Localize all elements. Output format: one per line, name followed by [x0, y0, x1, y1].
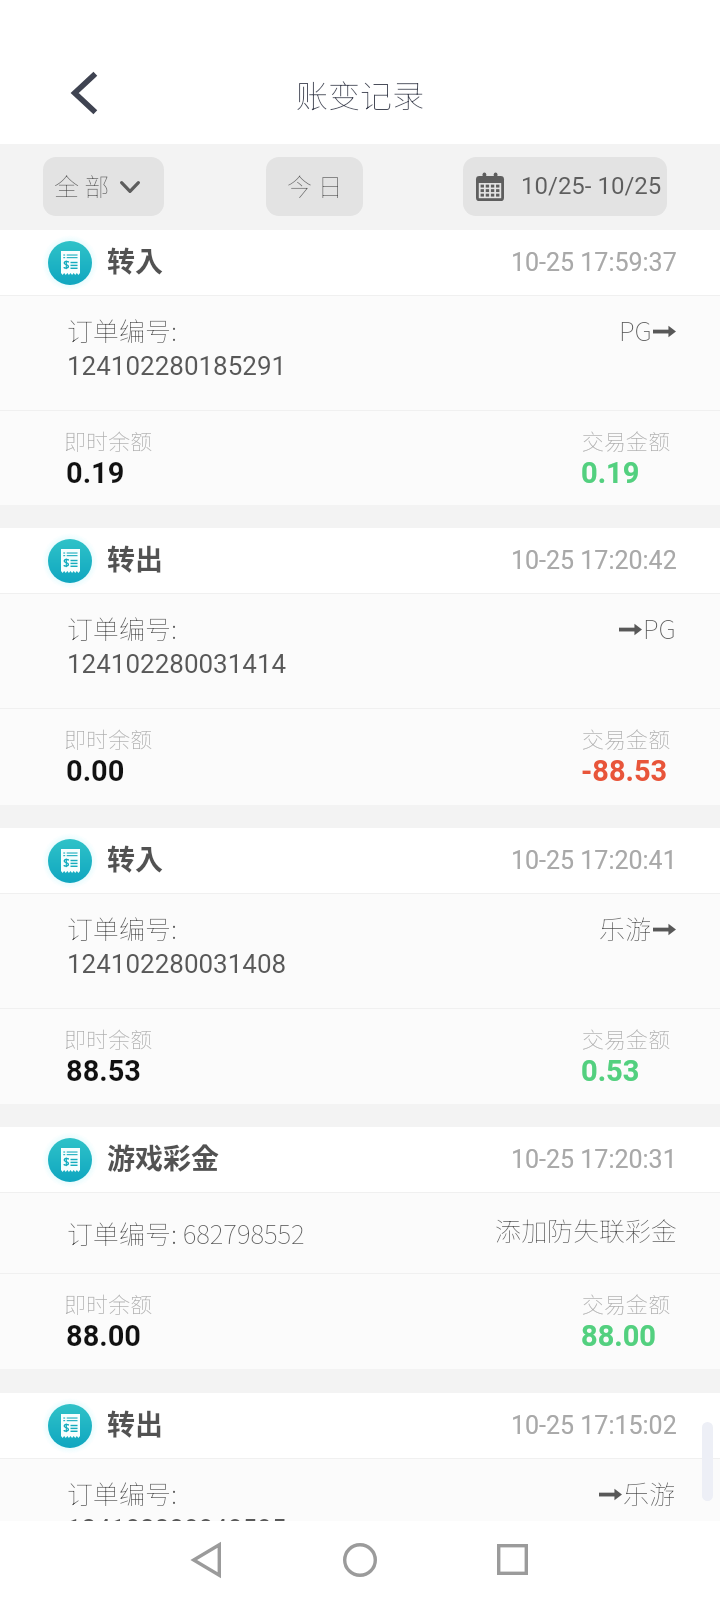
staticText: 10-25 17:59:37 [511, 248, 677, 277]
staticText: 转出 [107, 538, 164, 579]
staticText: PG [643, 609, 676, 647]
staticText: 交易金额 [582, 424, 671, 456]
button[interactable]: 转入 [0, 828, 720, 1104]
button[interactable]: 今 日 [266, 157, 363, 216]
staticText: 10/25- 10/25 [521, 172, 662, 200]
staticText: 10-25 17:20:31 [511, 1145, 677, 1174]
staticText: 转入 [107, 240, 164, 281]
staticText: 订单编号: [67, 909, 178, 947]
staticText: 124102280040505 [67, 1514, 287, 1544]
staticText: 10-25 17:20:42 [511, 546, 677, 575]
staticText: 今 日 [287, 167, 343, 203]
staticText: 交易金额 [582, 1287, 671, 1319]
button[interactable]: 全 部 [43, 157, 164, 216]
staticText: 88.00 [581, 1319, 656, 1353]
staticText: 124102280031408 [67, 949, 287, 979]
staticText: 订单编号: 682798552 [67, 1214, 305, 1252]
button[interactable]: Home [322, 1522, 398, 1598]
staticText: 0.19 [581, 456, 640, 490]
button[interactable]: 游戏彩金 [0, 1127, 720, 1369]
staticText: 124102280185291 [67, 351, 287, 381]
staticText: 交易金额 [582, 1022, 671, 1054]
staticText: 即时余额 [64, 1022, 153, 1054]
button[interactable]: 转出 [0, 528, 720, 805]
staticText: 乐游 [599, 909, 652, 947]
staticText: 即时余额 [64, 722, 153, 754]
staticText: 0.19 [66, 456, 125, 490]
staticText: 124102280031414 [67, 649, 287, 679]
staticText: 游戏彩金 [107, 1137, 220, 1178]
staticText: 88.53 [66, 1054, 141, 1088]
staticText: 全 部 [54, 167, 110, 203]
staticText: 乐游 [623, 1474, 676, 1512]
staticText: 账变记录 [296, 71, 425, 117]
staticText: 订单编号: [67, 609, 178, 647]
button[interactable]: Recent apps [474, 1521, 550, 1597]
staticText: 订单编号: [67, 1474, 178, 1512]
staticText: 即时余额 [64, 1287, 153, 1319]
staticText: PG [619, 311, 652, 349]
staticText: 添加防失联彩金 [495, 1211, 678, 1249]
staticText: 转入 [107, 838, 164, 879]
button[interactable]: 10/25- 10/25 [463, 157, 667, 216]
button[interactable]: 转出 [0, 1393, 720, 1600]
staticText: 交易金额 [582, 722, 671, 754]
staticText: 订单编号: [67, 311, 178, 349]
button[interactable]: 转入 [0, 230, 720, 505]
button[interactable]: Back [47, 57, 123, 133]
staticText: 10-25 17:20:41 [511, 846, 677, 875]
staticText: 0.00 [66, 754, 125, 788]
staticText: -88.53 [581, 754, 668, 788]
staticText: 转出 [107, 1403, 164, 1444]
staticText: 88.00 [66, 1319, 141, 1353]
staticText: 10-25 17:15:02 [511, 1411, 677, 1440]
staticText: 0.53 [581, 1054, 640, 1088]
button[interactable]: Back [168, 1522, 244, 1598]
staticText: 即时余额 [64, 424, 153, 456]
